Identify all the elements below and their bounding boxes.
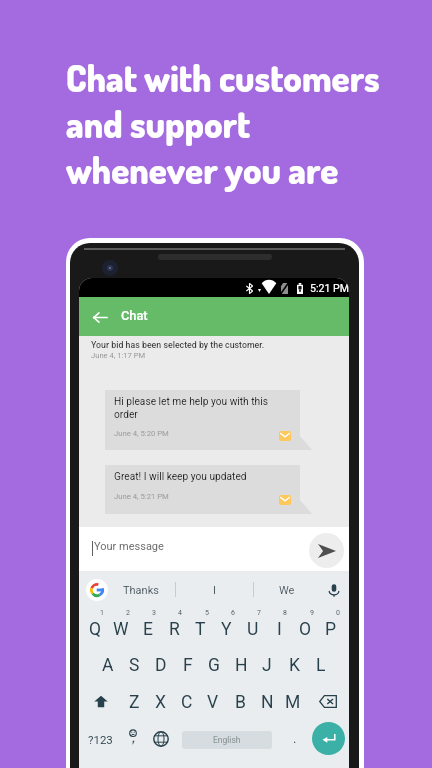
staticText: 4 <box>178 609 182 617</box>
staticText: Z <box>129 692 140 713</box>
button[interactable]: P <box>318 612 344 646</box>
button[interactable]: Back <box>87 305 112 330</box>
button[interactable]: V <box>200 685 226 719</box>
staticText: P <box>325 619 337 640</box>
button[interactable]: F <box>175 648 201 682</box>
staticText: J <box>262 655 272 676</box>
button[interactable]: N <box>254 685 280 719</box>
button[interactable]: Great! I will keep you updated <box>105 465 300 514</box>
button[interactable]: H <box>228 648 254 682</box>
button[interactable]: T <box>187 612 213 646</box>
staticText: June 4, 5:20 PM <box>114 429 169 438</box>
button[interactable]: Enter <box>312 722 345 755</box>
button[interactable]: Backspace <box>315 685 341 717</box>
staticText: V <box>207 692 219 713</box>
button[interactable]: I <box>266 612 292 646</box>
staticText: R <box>169 619 180 640</box>
staticText: We <box>279 584 295 597</box>
button[interactable]: Send <box>309 533 344 568</box>
staticText: . <box>293 731 297 746</box>
staticText: I <box>213 584 216 597</box>
button[interactable]: R <box>161 612 187 646</box>
button[interactable]: U <box>240 612 266 646</box>
staticText: Great! I will keep you updated <box>114 471 271 483</box>
button[interactable]: O <box>292 612 318 646</box>
button[interactable]: We <box>253 574 320 606</box>
staticText: June 4, 5:21 PM <box>114 492 169 501</box>
button[interactable]: K <box>281 648 307 682</box>
button[interactable]: . <box>284 723 306 753</box>
button[interactable]: X <box>147 685 173 719</box>
staticText: W <box>113 619 129 640</box>
staticText: Hi please let me help you with this orde… <box>114 396 271 421</box>
button[interactable]: W <box>108 612 134 646</box>
staticText: A <box>102 655 114 676</box>
staticText: 2 <box>126 609 130 617</box>
staticText: D <box>155 655 167 676</box>
staticText: T <box>195 619 206 640</box>
staticText: Q <box>89 619 102 640</box>
staticText: June 4, 1:17 PM <box>91 351 146 360</box>
button[interactable]: Z <box>121 685 147 719</box>
staticText: I <box>277 619 282 640</box>
button[interactable]: Hi please let me help you with this orde… <box>105 390 300 450</box>
button[interactable]: L <box>308 648 334 682</box>
button[interactable]: ?123 <box>84 726 117 753</box>
staticText: F <box>183 655 193 676</box>
button[interactable]: I <box>175 574 253 606</box>
staticText: Your bid has been selected by the custom… <box>91 340 265 350</box>
button[interactable]: Thanks <box>107 574 175 606</box>
staticText: C <box>181 692 193 713</box>
button[interactable]: M <box>280 685 306 719</box>
staticText: U <box>247 619 259 640</box>
button[interactable]: Q <box>82 612 108 646</box>
staticText: 5 <box>205 609 209 617</box>
staticText: Thanks <box>123 584 159 597</box>
staticText: E <box>143 619 153 640</box>
button[interactable]: C <box>174 685 200 719</box>
button[interactable]: Emoji <box>122 723 144 753</box>
button[interactable]: A <box>95 648 121 682</box>
button[interactable]: B <box>227 685 253 719</box>
staticText: N <box>261 692 274 713</box>
staticText: English <box>213 735 241 745</box>
staticText: 1 <box>100 609 104 617</box>
button[interactable]: Change keyboard language <box>150 728 172 750</box>
staticText: 0 <box>336 609 340 617</box>
staticText: whenever you are <box>66 147 339 193</box>
staticText: K <box>289 655 300 676</box>
button[interactable]: Y <box>213 612 239 646</box>
button[interactable]: Shift <box>88 685 114 717</box>
staticText: L <box>316 655 326 676</box>
staticText: Chat <box>121 308 148 323</box>
staticText: 5:21 PM <box>310 282 349 294</box>
staticText: H <box>235 655 248 676</box>
staticText: X <box>155 692 166 713</box>
staticText: Your message <box>94 540 164 553</box>
staticText: ?123 <box>88 733 113 746</box>
staticText: G <box>208 655 220 676</box>
button[interactable]: J <box>254 648 280 682</box>
staticText: 6 <box>231 609 235 617</box>
staticText: and support <box>66 101 251 147</box>
staticText: Chat with customers <box>66 55 380 101</box>
button[interactable]: S <box>121 648 147 682</box>
staticText: O <box>299 619 312 640</box>
staticText: Y <box>221 619 232 640</box>
button[interactable]: Voice input <box>322 578 346 602</box>
staticText: 7 <box>257 609 261 617</box>
staticText: M <box>285 692 301 713</box>
button[interactable]: English <box>182 731 272 749</box>
staticText: 8 <box>283 609 287 617</box>
staticText: 9 <box>310 609 314 617</box>
button[interactable]: G <box>201 648 227 682</box>
staticText: B <box>235 692 246 713</box>
button[interactable]: D <box>148 648 174 682</box>
staticText: S <box>129 655 140 676</box>
button[interactable]: E <box>135 612 161 646</box>
staticText: 3 <box>152 609 156 617</box>
